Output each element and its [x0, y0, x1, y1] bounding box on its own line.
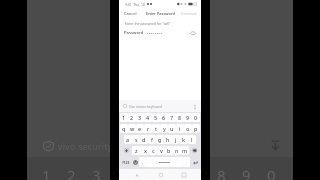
button[interactable]: w — [128, 124, 136, 133]
button[interactable]: t — [152, 124, 160, 133]
button[interactable]: 2 — [128, 113, 136, 122]
button[interactable]: 8 — [176, 113, 184, 122]
staticText: 9 — [242, 165, 251, 180]
button[interactable]: Back — [131, 169, 142, 180]
staticText: e — [138, 125, 142, 132]
button[interactable]: 0 — [192, 113, 200, 122]
button[interactable]: . — [183, 157, 190, 167]
button[interactable]: z — [132, 146, 141, 155]
staticText: h — [166, 136, 170, 143]
staticText: i — [179, 125, 181, 132]
button[interactable]: m — [181, 146, 189, 155]
staticText: a — [126, 136, 130, 143]
staticText: Enter the password for "wifi" — [125, 21, 171, 26]
staticText: . — [186, 159, 188, 165]
staticText: g — [158, 136, 162, 143]
button[interactable]: l — [188, 135, 196, 144]
button[interactable]: Shift — [120, 146, 132, 155]
button[interactable]: e — [136, 124, 144, 133]
button[interactable]: 4 — [144, 113, 152, 122]
button[interactable]: Home — [155, 169, 166, 180]
button[interactable]: h — [164, 135, 172, 144]
button[interactable]: v — [157, 146, 165, 155]
staticText: q — [122, 125, 126, 132]
staticText: d — [142, 136, 146, 143]
staticText: l — [191, 136, 193, 143]
button[interactable]: ?123 — [120, 157, 131, 167]
button[interactable]: Cancel — [124, 11, 137, 16]
staticText: 9:41 Thu, 14 — [125, 2, 145, 6]
staticText: f — [151, 136, 153, 143]
staticText: 4 — [117, 165, 126, 180]
staticText: m — [182, 147, 188, 154]
staticText: Cancel — [124, 11, 137, 16]
staticText: v — [160, 147, 163, 154]
staticText: 2 — [67, 165, 76, 180]
button[interactable]: Enter — [190, 157, 200, 167]
button[interactable]: x — [141, 146, 149, 155]
button[interactable]: o — [184, 124, 192, 133]
button[interactable]: u — [168, 124, 176, 133]
button[interactable]: Keyboard options — [192, 104, 197, 109]
staticText: Connect — [181, 11, 197, 16]
button[interactable]: f — [148, 135, 156, 144]
staticText: 3 — [138, 114, 142, 121]
button[interactable]: k — [180, 135, 188, 144]
staticText: 1 — [42, 165, 51, 180]
staticText: c — [152, 147, 155, 154]
button[interactable]: s — [132, 135, 140, 144]
button[interactable]: j — [172, 135, 180, 144]
staticText: s — [135, 136, 138, 143]
button[interactable]: Backspace — [189, 146, 200, 155]
staticText: ?123 — [122, 160, 130, 165]
staticText: 2 — [130, 114, 134, 121]
button[interactable]: Space — [146, 157, 183, 167]
button[interactable]: p — [192, 124, 200, 133]
button[interactable]: y — [160, 124, 168, 133]
button[interactable]: 5 — [152, 113, 160, 122]
staticText: 0 — [194, 114, 198, 121]
staticText: 6 — [162, 114, 166, 121]
staticText: 1 — [122, 114, 126, 121]
staticText: z — [135, 147, 138, 154]
button[interactable]: Recents — [178, 169, 189, 180]
button[interactable]: 3 — [136, 113, 144, 122]
button[interactable]: a — [124, 135, 132, 144]
button[interactable]: d — [140, 135, 148, 144]
staticText: 8 — [217, 165, 226, 180]
staticText: 5 — [154, 114, 158, 121]
button[interactable]: 9 — [184, 113, 192, 122]
staticText: 3 — [92, 165, 101, 180]
staticText: 4 — [146, 114, 150, 121]
staticText: o — [186, 125, 190, 132]
staticText: •••••••• — [147, 31, 164, 36]
staticText: Enter Password — [146, 11, 175, 16]
staticText: w — [130, 125, 135, 132]
button[interactable]: b — [165, 146, 173, 155]
button[interactable]: Show password — [190, 31, 196, 35]
staticText: p — [194, 125, 198, 132]
button[interactable]: g — [156, 135, 164, 144]
staticText: 7 — [192, 165, 201, 180]
button[interactable]: n — [173, 146, 181, 155]
button[interactable]: 7 — [168, 113, 176, 122]
button[interactable]: i — [176, 124, 184, 133]
staticText: y — [163, 125, 166, 132]
staticText: x — [144, 147, 147, 154]
staticText: 5 — [142, 165, 151, 180]
button[interactable]: c — [149, 146, 157, 155]
button[interactable]: r — [144, 124, 152, 133]
staticText: 8 — [178, 114, 182, 121]
button[interactable]: 6 — [160, 113, 168, 122]
staticText: 0 — [267, 165, 276, 180]
button[interactable]: q — [120, 124, 128, 133]
button[interactable]: Emoji — [131, 157, 139, 167]
staticText: vivo security — [58, 141, 113, 153]
button[interactable]: , — [139, 157, 146, 167]
staticText: 9 — [186, 114, 190, 121]
button[interactable]: Connect — [181, 11, 197, 16]
button[interactable]: 1 — [120, 113, 128, 122]
staticText: Use viewer keyboard — [129, 104, 163, 109]
staticText: b — [167, 147, 171, 154]
staticText: Password — [124, 30, 144, 36]
